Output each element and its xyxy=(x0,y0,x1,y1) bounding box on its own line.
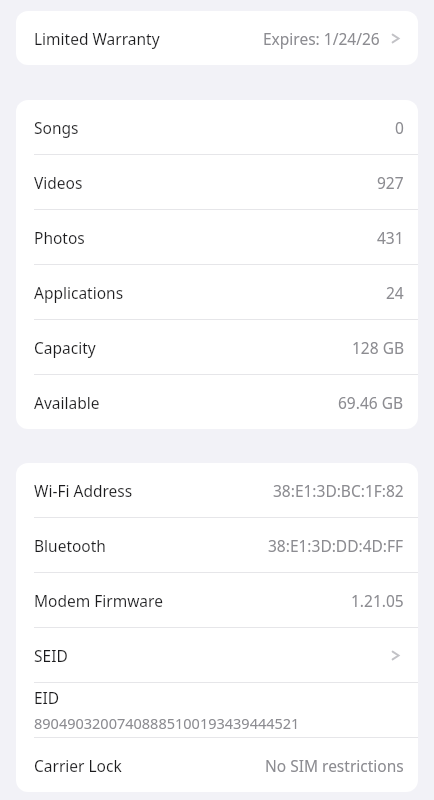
staticText: Available xyxy=(34,392,100,413)
staticText: Photos xyxy=(34,227,85,248)
other: Open SEID xyxy=(389,648,404,663)
staticText: Carrier Lock xyxy=(34,755,122,776)
button[interactable]: Limited Warranty xyxy=(16,11,418,65)
button[interactable]: Wi-Fi Address xyxy=(16,463,418,517)
button[interactable]: Photos xyxy=(16,210,418,264)
button[interactable]: Capacity xyxy=(16,320,418,374)
button[interactable]: Applications xyxy=(16,265,418,319)
button[interactable]: Bluetooth xyxy=(16,518,418,572)
staticText: 431 xyxy=(377,227,404,248)
staticText: 38:E1:3D:BC:1F:82 xyxy=(273,480,404,501)
staticText: Bluetooth xyxy=(34,535,106,556)
button[interactable]: Songs xyxy=(16,100,418,154)
staticText: SEID xyxy=(34,645,68,666)
button[interactable]: Carrier Lock xyxy=(16,738,418,792)
staticText: EID xyxy=(34,687,60,708)
staticText: Expires: 1/24/26 xyxy=(263,28,380,49)
other: Open Limited Warranty xyxy=(389,31,404,46)
button[interactable]: EID xyxy=(16,683,418,737)
staticText: 0 xyxy=(395,117,404,138)
staticText: 128 GB xyxy=(352,337,404,358)
staticText: 38:E1:3D:DD:4D:FF xyxy=(268,535,404,556)
button[interactable]: Modem Firmware xyxy=(16,573,418,627)
staticText: 69.46 GB xyxy=(338,392,404,413)
staticText: No SIM restrictions xyxy=(265,755,404,776)
staticText: Capacity xyxy=(34,337,96,358)
staticText: Videos xyxy=(34,172,83,193)
staticText: Limited Warranty xyxy=(34,28,160,49)
staticText: Wi-Fi Address xyxy=(34,480,133,501)
staticText: Applications xyxy=(34,282,124,303)
button[interactable]: SEID xyxy=(16,628,418,682)
staticText: 89049032007408885100193439444521 xyxy=(34,713,300,733)
staticText: Modem Firmware xyxy=(34,590,163,611)
button[interactable]: Available xyxy=(16,375,418,429)
staticText: Songs xyxy=(34,117,79,138)
button[interactable]: Videos xyxy=(16,155,418,209)
staticText: 927 xyxy=(377,172,404,193)
staticText: 24 xyxy=(386,282,404,303)
staticText: 1.21.05 xyxy=(351,590,404,611)
